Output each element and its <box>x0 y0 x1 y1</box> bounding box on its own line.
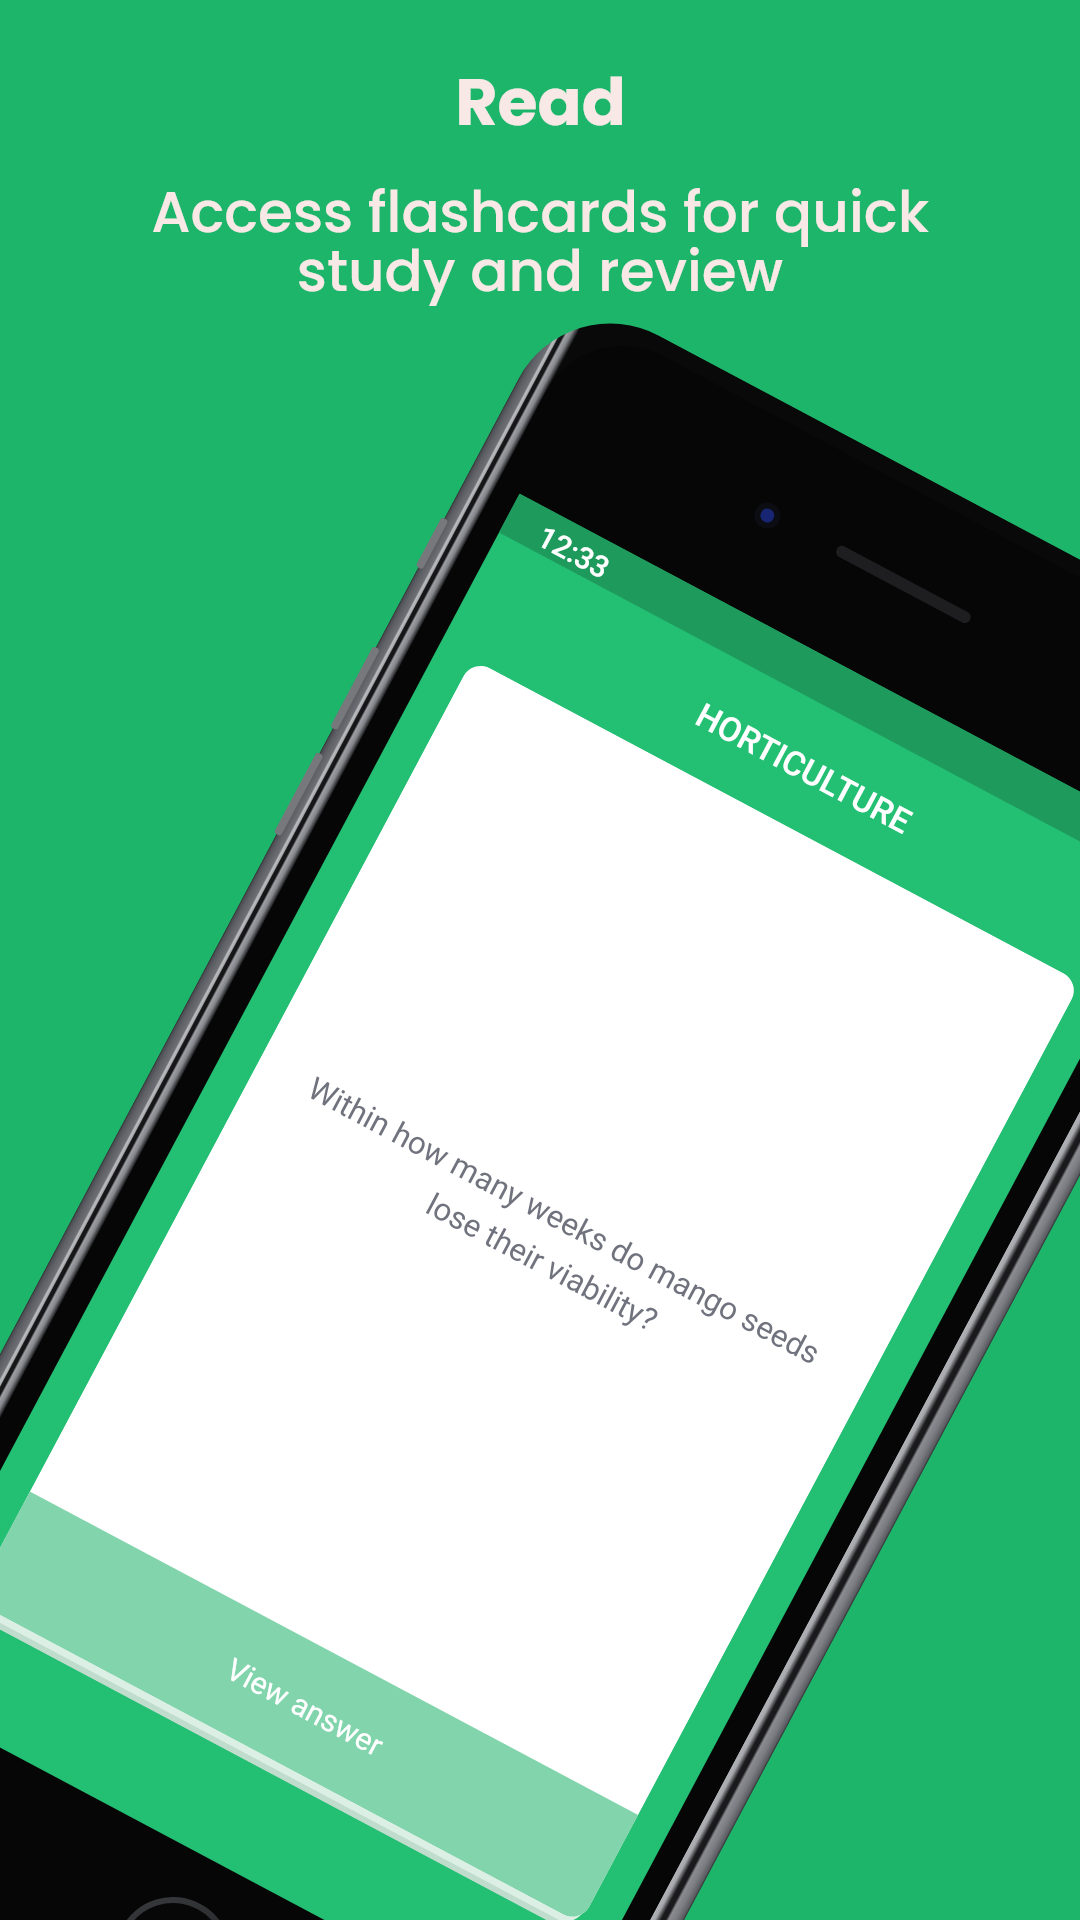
button[interactable]: Within how many weeks do mango seeds los… <box>0 659 1080 1920</box>
staticText: 12:33 <box>532 519 616 586</box>
staticText: HORTICULTURE <box>689 696 918 842</box>
staticText: Read <box>455 57 626 148</box>
button[interactable]: View answer <box>0 1491 638 1920</box>
staticText: View answer <box>220 1651 390 1764</box>
staticText: Within how many weeks do mango seeds los… <box>229 1043 877 1441</box>
staticText: Access flashcards for quick study and re… <box>151 173 929 310</box>
